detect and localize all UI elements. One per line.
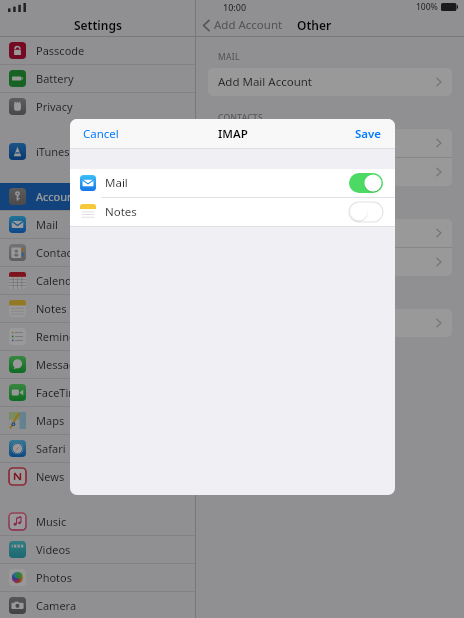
staticText: 10:00 — [223, 1, 247, 13]
button[interactable]: Notes — [70, 198, 395, 226]
staticText: Contacts — [36, 245, 82, 260]
staticText: Other — [297, 17, 332, 33]
button[interactable]: Mail — [0, 211, 195, 238]
staticText: FaceTime — [36, 385, 85, 400]
button[interactable]: Notes — [0, 295, 195, 322]
button[interactable]: Add macOS Server Account — [208, 309, 452, 337]
button[interactable]: Videos — [0, 536, 195, 563]
button[interactable]: Safari — [0, 435, 195, 462]
staticText: Add Mail Account — [218, 74, 313, 90]
button[interactable]: Photos — [0, 564, 195, 591]
button[interactable]: Accounts — [0, 183, 195, 210]
button[interactable]: Reminders — [0, 323, 195, 350]
button[interactable]: Add Account — [202, 17, 283, 33]
staticText: Videos — [36, 542, 71, 557]
staticText: Save — [355, 126, 382, 142]
button[interactable]: Add Mail Account — [208, 68, 452, 96]
button[interactable]: Save — [342, 120, 395, 148]
button[interactable]: Camera — [0, 592, 195, 618]
button[interactable]: Battery — [0, 65, 195, 92]
button[interactable]: Add LDAP Account — [208, 129, 452, 157]
staticText: Battery — [36, 71, 74, 86]
staticText: CONTACTS — [218, 112, 263, 124]
staticText: Accounts — [36, 189, 84, 204]
button[interactable]: Privacy — [0, 93, 195, 120]
button[interactable]: Calendar — [0, 267, 195, 294]
staticText: Maps — [36, 413, 65, 428]
staticText: Reminders — [36, 329, 92, 344]
staticText: Camera — [36, 598, 77, 613]
staticText: IMAP — [218, 126, 248, 142]
button[interactable]: Messages — [0, 351, 195, 378]
staticText: 100% — [416, 1, 438, 13]
staticText: Add CalDAV Account — [218, 225, 328, 241]
staticText: iTunes — [36, 144, 70, 159]
button[interactable]: iTunes — [0, 138, 195, 165]
staticText: Calendar — [36, 273, 83, 288]
button[interactable]: Off — [349, 202, 383, 222]
staticText: Cancel — [83, 126, 119, 142]
staticText: Messages — [36, 357, 88, 372]
staticText: Settings — [74, 17, 122, 33]
staticText: Mail — [105, 175, 128, 191]
staticText: MAIL — [218, 51, 240, 63]
button[interactable]: On — [349, 173, 383, 193]
staticText: Notes — [105, 204, 137, 220]
button[interactable]: News — [0, 463, 195, 490]
staticText: Safari — [36, 441, 66, 456]
button[interactable]: FaceTime — [0, 379, 195, 406]
button[interactable]: Cancel — [70, 120, 132, 148]
staticText: News — [36, 469, 65, 484]
button[interactable]: Contacts — [0, 239, 195, 266]
staticText: Mail — [36, 217, 58, 232]
staticText: Add CardDAV Account — [218, 164, 337, 180]
staticText: Privacy — [36, 99, 73, 114]
staticText: Passcode — [36, 43, 85, 58]
button[interactable]: Music — [0, 508, 195, 535]
staticText: Photos — [36, 570, 73, 585]
button[interactable]: Passcode — [0, 37, 195, 64]
staticText: Add Account — [214, 17, 283, 33]
button[interactable]: Add CardDAV Account — [208, 158, 452, 186]
staticText: Add LDAP Account — [218, 135, 318, 151]
button[interactable]: Mail — [70, 169, 395, 197]
button[interactable]: Add Subscribed Calendar — [208, 248, 452, 276]
staticText: Music — [36, 514, 67, 529]
button[interactable]: Maps — [0, 407, 195, 434]
button[interactable]: Add CalDAV Account — [208, 219, 452, 247]
staticText: Notes — [36, 301, 67, 316]
